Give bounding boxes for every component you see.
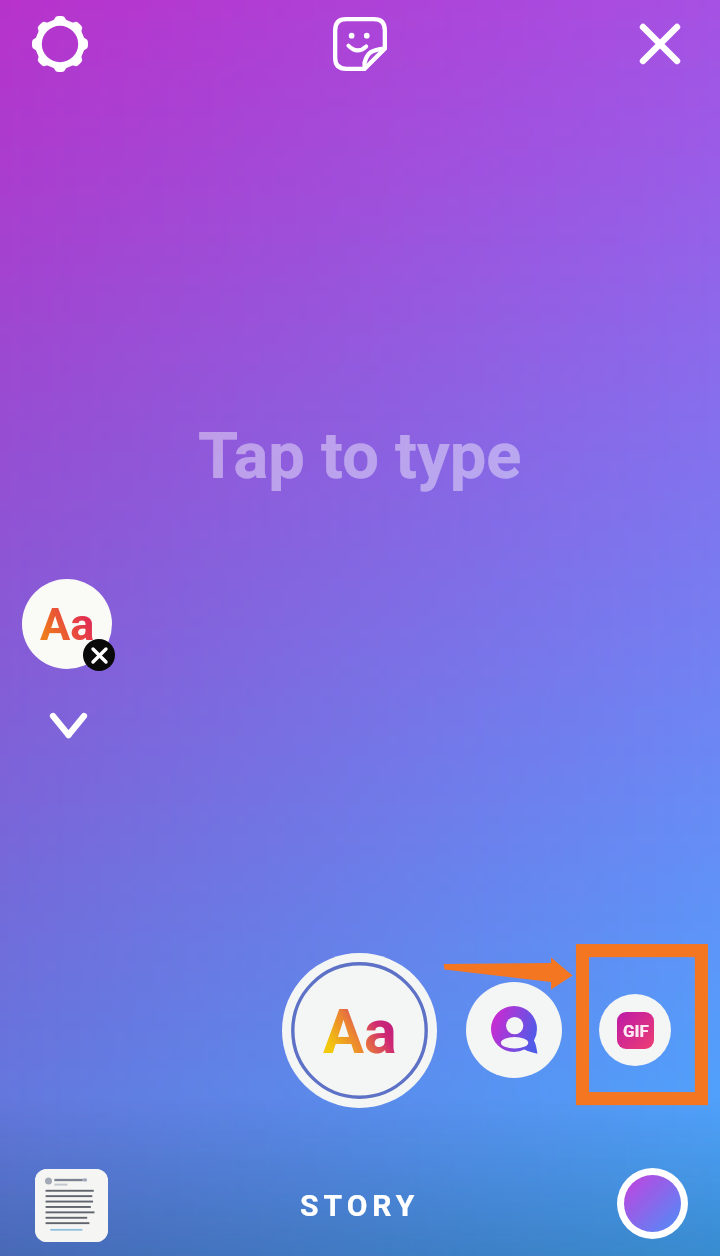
staticText: Tap to type [198,418,522,494]
staticText: Aa [40,598,95,651]
button[interactable]: Gallery [35,1169,108,1242]
button[interactable]: Aa [22,579,112,669]
button[interactable]: Camera settings [18,2,102,86]
button[interactable]: GIF [599,994,671,1066]
button[interactable]: Collapse [37,700,99,750]
button[interactable]: Your story [617,1168,688,1239]
staticText: GIF [623,1021,649,1041]
button[interactable]: Close [618,2,702,86]
button[interactable]: Mention [466,982,562,1078]
button[interactable]: Tap to type [110,404,610,508]
button[interactable]: Remove text [83,639,115,671]
button[interactable]: Stickers [318,2,402,86]
staticText: STORY [300,1188,420,1223]
button[interactable]: Aa [282,953,437,1108]
button[interactable]: STORY [280,1180,440,1230]
staticText: Aa [323,996,397,1067]
